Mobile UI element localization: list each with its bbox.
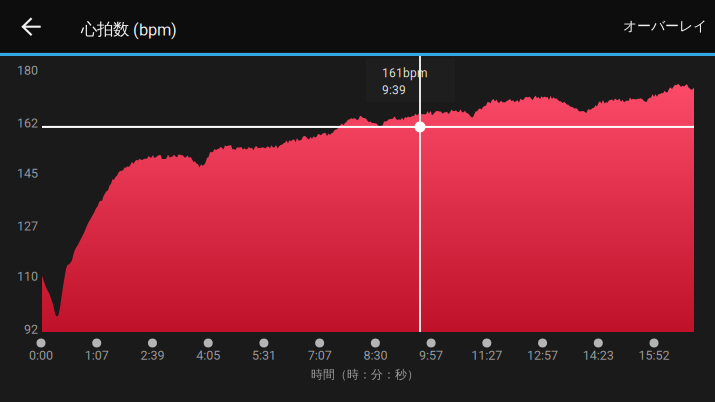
staticText: 4:05 [196, 348, 220, 363]
button[interactable]: Back [0, 0, 64, 52]
staticText: 145 [17, 166, 38, 181]
staticText: 時間（時：分：秒） [311, 367, 419, 382]
staticText: 92 [24, 322, 38, 337]
staticText: 110 [17, 269, 38, 284]
button[interactable]: オーバーレイ [557, 0, 707, 52]
staticText: 12:57 [527, 348, 558, 363]
staticText: オーバーレイ [623, 17, 707, 35]
staticText: 心拍数 (bpm) [81, 19, 177, 40]
staticText: 7:07 [308, 348, 332, 363]
staticText: 14:23 [583, 348, 614, 363]
staticText: 2:39 [140, 348, 164, 363]
staticText: 0:00 [29, 348, 53, 363]
staticText: 15:52 [638, 348, 669, 363]
staticText: 9:39 [382, 83, 406, 97]
staticText: 1:07 [85, 348, 109, 363]
staticText: 9:57 [419, 348, 443, 363]
staticText: 11:27 [471, 348, 502, 363]
staticText: 162 [17, 116, 38, 131]
staticText: 5:31 [252, 348, 276, 363]
staticText: 127 [17, 219, 38, 234]
staticText: 161bpm [382, 66, 428, 80]
staticText: 180 [17, 63, 38, 78]
staticText: 8:30 [363, 348, 387, 363]
